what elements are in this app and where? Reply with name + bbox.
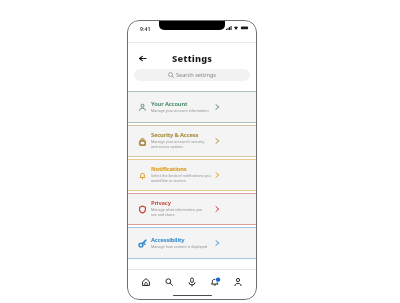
button[interactable]: Your Account — [127, 91, 257, 123]
staticText: Accessibility — [151, 236, 185, 244]
button[interactable]: Search settings — [134, 69, 250, 81]
button[interactable]: Home — [139, 275, 153, 289]
button[interactable]: Search — [162, 275, 176, 289]
button[interactable]: Profile — [231, 275, 245, 289]
staticText: Select the kinds of notifications you wo… — [151, 173, 211, 183]
staticText: Your Account — [151, 100, 188, 108]
staticText: Manage what information you see and shar… — [151, 207, 203, 217]
staticText: 9:41 — [140, 25, 151, 32]
staticText: Settings — [172, 52, 213, 65]
button[interactable]: Privacy — [127, 193, 257, 225]
button[interactable]: Notifications — [127, 159, 257, 191]
button[interactable]: Accessibility — [127, 227, 257, 259]
button[interactable]: Voice search — [185, 275, 199, 289]
staticText: Search settings — [176, 71, 217, 79]
staticText: Manage your account information — [151, 108, 209, 113]
staticText: Security & Access — [151, 131, 199, 139]
staticText: Notifications — [151, 165, 187, 173]
button[interactable]: Security & Access — [127, 125, 257, 157]
staticText: Manage your account's security and acces… — [151, 139, 205, 149]
staticText: Manage how content is displayed — [151, 244, 208, 249]
button[interactable]: Notifications — [208, 275, 222, 289]
button[interactable]: Back — [136, 52, 148, 64]
staticText: Privacy — [151, 199, 171, 207]
